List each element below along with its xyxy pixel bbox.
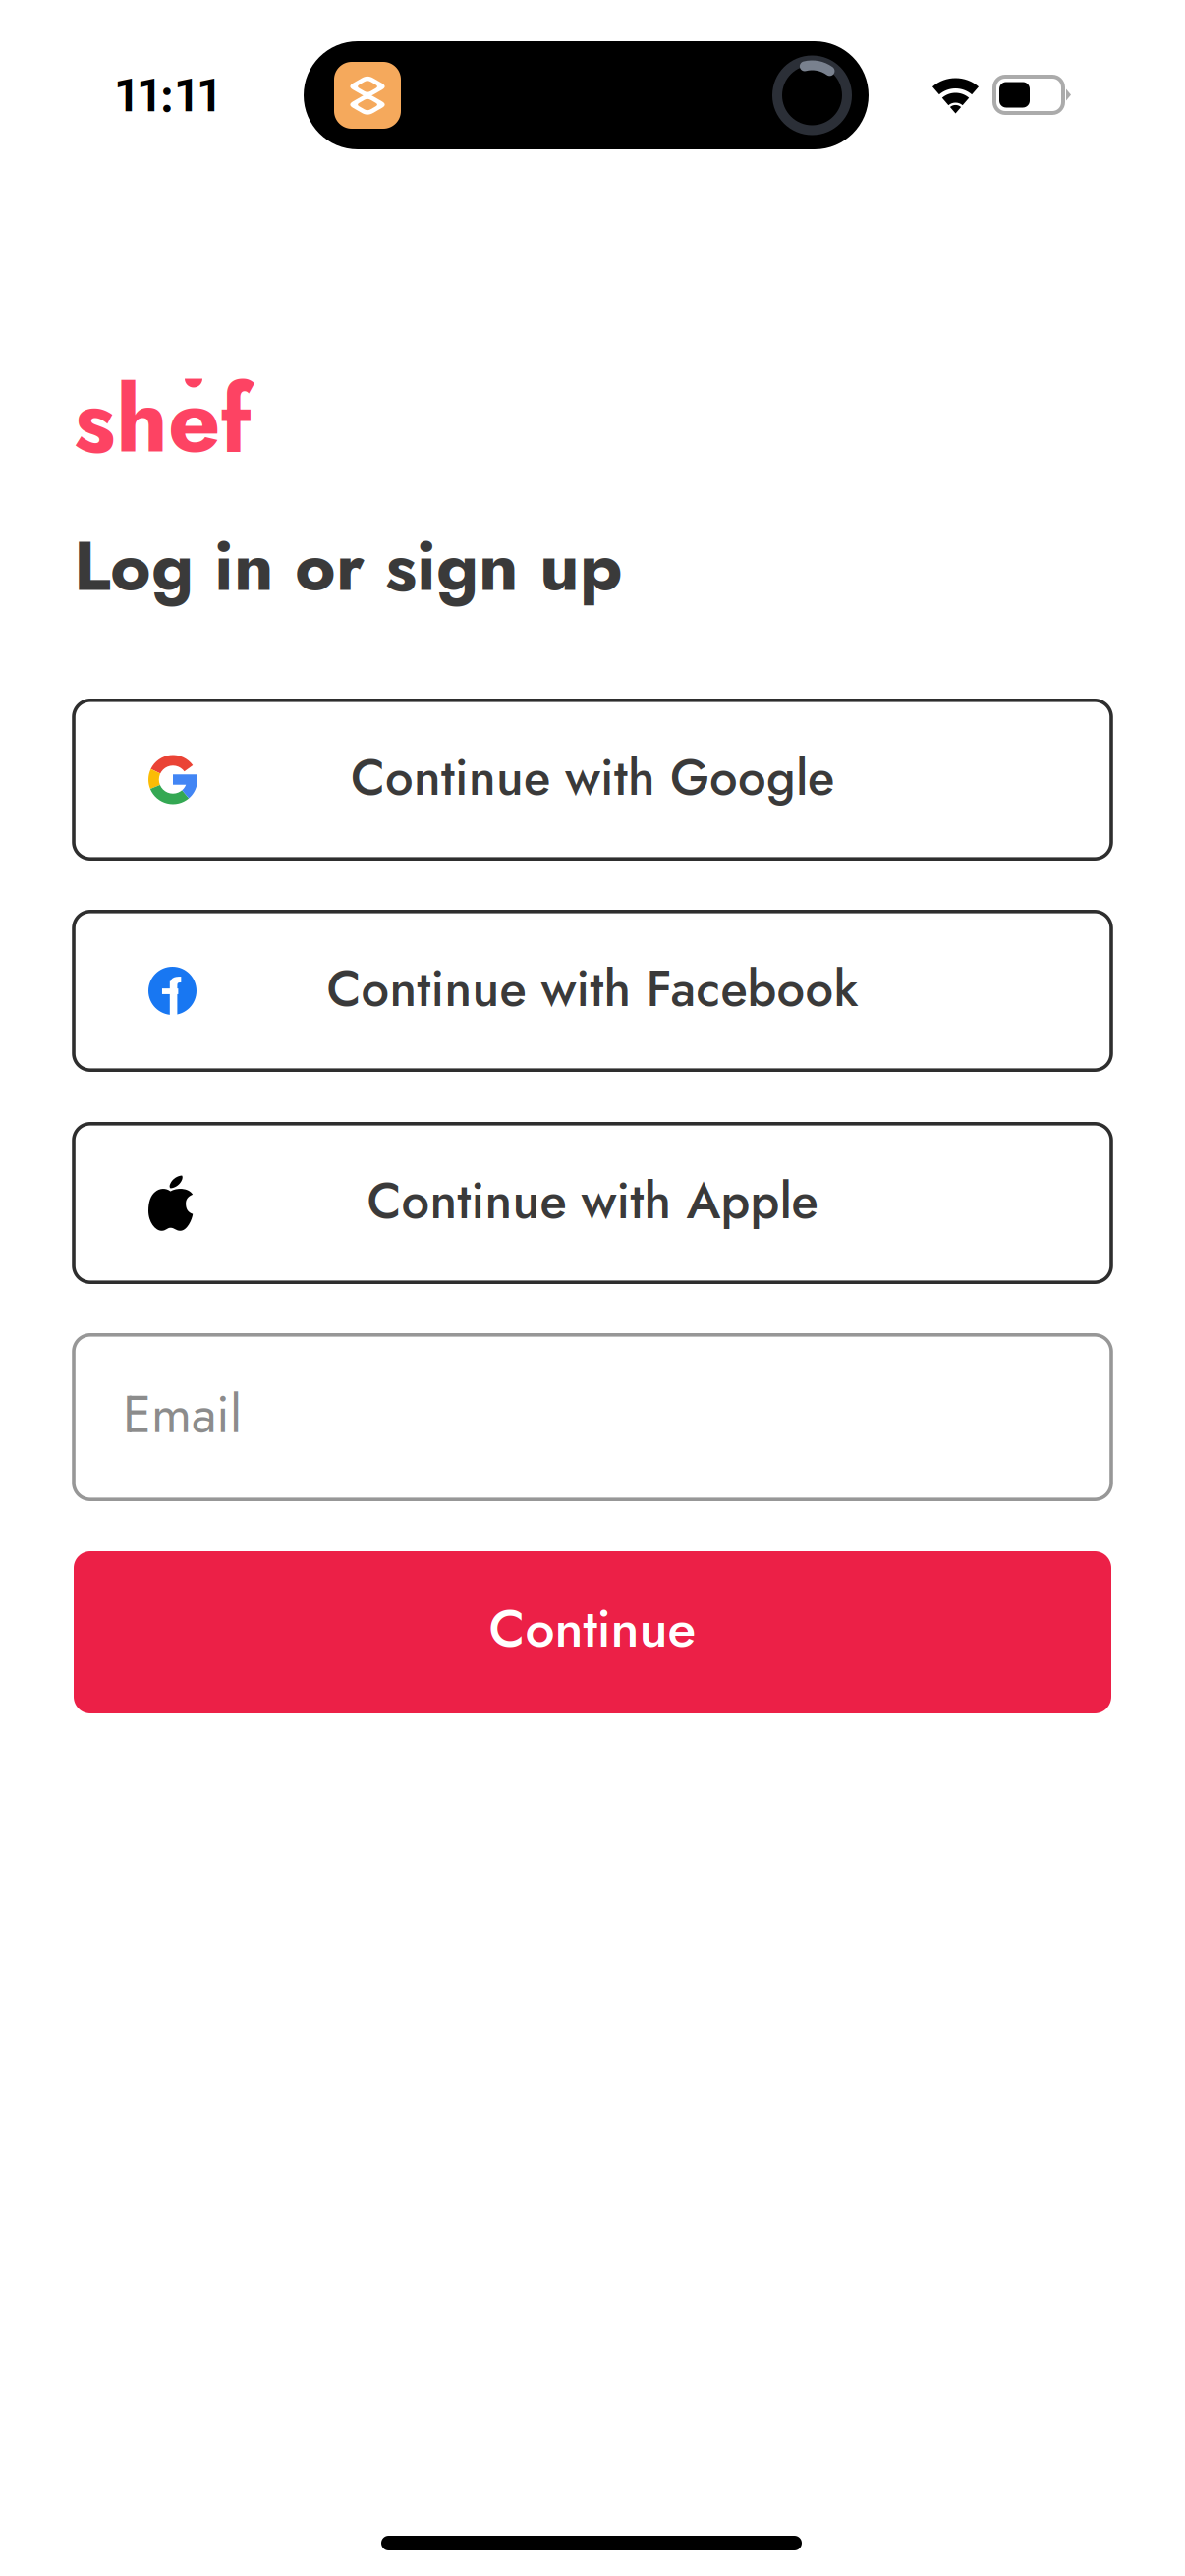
staticText: Continue with Google — [351, 742, 834, 814]
button[interactable]: Continue with Apple — [74, 1124, 1111, 1282]
staticText: 11:11 — [114, 62, 220, 128]
button[interactable]: Continue with Facebook — [74, 912, 1111, 1070]
staticText: Email — [123, 1377, 242, 1452]
staticText: shef — [74, 353, 252, 486]
staticText: Continue with Facebook — [327, 953, 858, 1025]
staticText: Continue — [489, 1591, 696, 1666]
staticText: Continue with Apple — [367, 1165, 818, 1237]
button[interactable]: Email — [74, 1335, 1111, 1499]
button[interactable]: Continue — [74, 1551, 1111, 1713]
staticText: Log in or sign up — [74, 516, 623, 616]
button[interactable]: Continue with Google — [74, 700, 1111, 859]
